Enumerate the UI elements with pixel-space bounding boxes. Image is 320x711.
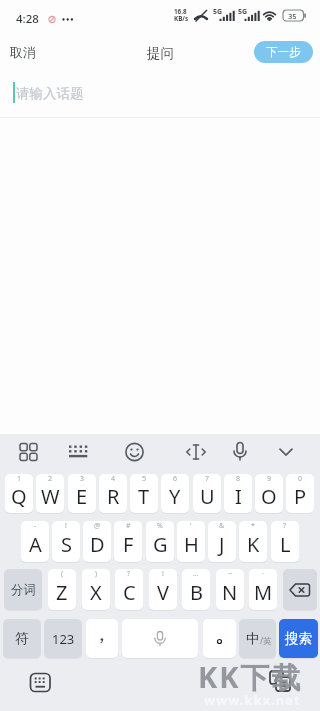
button[interactable]: - <box>21 521 49 562</box>
button[interactable]: 符 <box>3 619 41 658</box>
staticText: E <box>76 483 88 510</box>
staticText: ! <box>162 569 164 579</box>
button[interactable] <box>283 569 317 610</box>
staticText: 5 <box>142 474 147 484</box>
button[interactable]: 搜索 <box>279 619 318 658</box>
button[interactable]: ? <box>271 521 299 562</box>
staticText: @ <box>94 521 101 531</box>
button[interactable]: @ <box>83 521 111 562</box>
staticText: I <box>235 483 242 510</box>
staticText: 8 <box>236 474 241 484</box>
staticText: X <box>90 579 102 606</box>
staticText: M <box>254 579 273 606</box>
staticText: W <box>41 483 60 510</box>
staticText: 16.8 <box>174 7 187 16</box>
button[interactable]: ! <box>52 521 80 562</box>
button[interactable]: 0 <box>286 474 314 513</box>
staticText: L <box>280 531 291 558</box>
staticText: … <box>193 569 199 579</box>
button[interactable]: ( <box>48 569 76 610</box>
button[interactable]: * <box>239 521 267 562</box>
staticText: 3 <box>80 474 85 484</box>
staticText: 4:28 <box>16 11 39 27</box>
staticText: R <box>107 483 120 510</box>
button[interactable]: # <box>114 521 142 562</box>
staticText: F <box>123 531 134 558</box>
staticText: 5G <box>213 7 223 17</box>
staticText: 搜索 <box>285 630 312 647</box>
staticText: * <box>251 521 255 531</box>
staticText: S <box>61 531 72 558</box>
staticText: www.kkx.net <box>204 691 301 709</box>
staticText: Y <box>169 483 181 510</box>
staticText: ! <box>65 521 67 531</box>
staticText: G <box>153 531 168 558</box>
staticText: & <box>219 521 225 531</box>
staticText: T <box>138 483 150 510</box>
button[interactable]: 取消 <box>2 40 44 64</box>
button[interactable]: 7 <box>193 474 221 513</box>
button[interactable]: 下一步 <box>254 41 313 63</box>
staticText: 取消 <box>10 44 36 60</box>
button[interactable]: 中 <box>239 619 276 658</box>
staticText: KK下载 <box>198 657 303 697</box>
staticText: ? <box>127 569 131 579</box>
staticText: B <box>190 579 203 606</box>
staticText: K <box>247 531 260 558</box>
staticText: 35 <box>288 11 297 21</box>
staticText: · <box>262 569 264 579</box>
staticText: V <box>157 579 169 606</box>
button[interactable]: 6 <box>161 474 189 513</box>
staticText: 5G <box>238 7 248 17</box>
staticText: D <box>90 531 105 558</box>
button[interactable]: 1 <box>5 474 33 513</box>
button[interactable]: 8 <box>224 474 252 513</box>
button[interactable] <box>122 619 198 658</box>
button[interactable] <box>203 619 236 658</box>
staticText: A <box>29 531 42 558</box>
button[interactable]: ~ <box>216 569 244 610</box>
staticText: ~ <box>228 569 233 579</box>
button[interactable]: ) <box>82 569 110 610</box>
button[interactable]: % <box>146 521 174 562</box>
staticText: ' <box>190 521 192 531</box>
button[interactable]: … <box>182 569 210 610</box>
staticText: 6 <box>173 474 178 484</box>
staticText: % <box>157 521 163 531</box>
staticText: KB/s <box>174 14 189 23</box>
button[interactable]: 5 <box>130 474 158 513</box>
staticText: Q <box>11 483 27 510</box>
staticText: P <box>294 483 307 510</box>
staticText: 2 <box>48 474 53 484</box>
staticText: J <box>219 531 225 558</box>
button[interactable]: 4 <box>99 474 127 513</box>
staticText: 提问 <box>147 45 174 62</box>
button[interactable]: 2 <box>36 474 64 513</box>
button[interactable]: 9 <box>255 474 283 513</box>
staticText: 下一步 <box>266 45 301 59</box>
staticText: 4 <box>111 474 116 484</box>
button[interactable]: · <box>249 569 277 610</box>
staticText: 请输入话题 <box>16 85 84 102</box>
staticText: 分词 <box>11 582 36 598</box>
button[interactable]: ' <box>177 521 205 562</box>
button[interactable]: 分词 <box>4 569 42 610</box>
staticText: 0 <box>298 474 303 484</box>
staticText: ( <box>61 569 64 579</box>
staticText: /英 <box>260 635 272 647</box>
staticText: U <box>200 483 215 510</box>
staticText: 123 <box>52 630 75 648</box>
button[interactable]: 123 <box>44 619 82 658</box>
button[interactable]: & <box>208 521 236 562</box>
staticText: 7 <box>205 474 210 484</box>
staticText: N <box>222 579 238 606</box>
staticText: O <box>261 483 277 510</box>
button[interactable] <box>86 619 118 658</box>
staticText: C <box>123 579 136 606</box>
staticText: ) <box>95 569 98 579</box>
staticText: Z <box>56 579 68 606</box>
staticText: ? <box>283 521 287 531</box>
button[interactable]: ? <box>115 569 143 610</box>
button[interactable]: ! <box>149 569 177 610</box>
button[interactable]: 3 <box>68 474 96 513</box>
